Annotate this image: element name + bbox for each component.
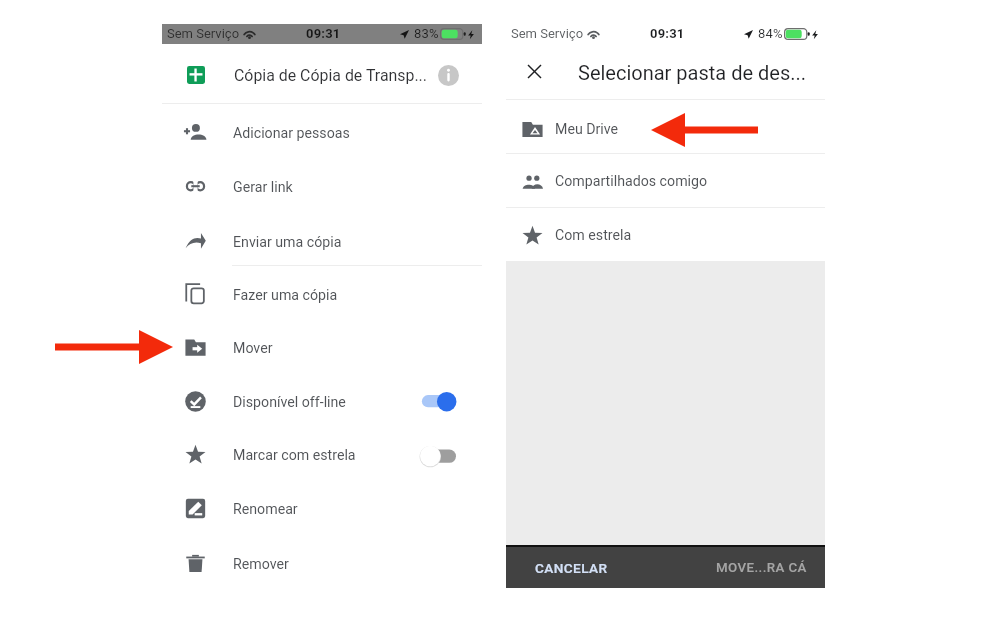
staticText: Compartilhados comigo [555,173,708,190]
staticText: Meu Drive [555,121,619,138]
staticText: Remover [233,556,289,573]
button[interactable]: Com estrela [506,208,825,262]
staticText: Gerar link [233,179,293,196]
staticText: Sem Serviço [167,26,240,41]
staticText: 83% [414,26,439,41]
button[interactable]: CANCELAR [522,547,622,588]
staticText: Selecionar pasta de des... [578,61,807,84]
button[interactable]: Mover [162,320,482,374]
staticText: Enviar uma cópia [233,234,342,251]
staticText: Disponível off-line [233,394,346,411]
button[interactable]: Disponível off-line [162,374,482,428]
staticText: MOVE...RA CÁ [716,560,807,576]
staticText: Sem Serviço [511,26,584,41]
button[interactable]: Fechar [517,54,552,89]
staticText: 84% [758,26,783,41]
button[interactable]: Gerar link [162,159,482,213]
button[interactable]: MOVE...RA CÁ [696,547,816,588]
button[interactable]: Remover [162,536,482,590]
button[interactable]: Renomear [162,481,482,535]
button[interactable] [415,388,457,414]
button[interactable]: Cópia de Cópia de Transp... [162,48,482,102]
staticText: 09:31 [306,26,341,41]
staticText: Adicionar pessoas [233,125,350,142]
button[interactable]: Adicionar pessoas [162,105,482,159]
button[interactable]: Meu Drive [506,102,825,156]
staticText: Com estrela [555,227,632,244]
button[interactable] [415,441,457,467]
staticText: Mover [233,340,273,357]
staticText: Renomear [233,501,298,518]
button[interactable]: Compartilhados comigo [506,154,825,208]
staticText: Fazer uma cópia [233,287,338,304]
staticText: CANCELAR [535,560,608,576]
staticText: Cópia de Cópia de Transp... [234,66,427,85]
button[interactable]: Fazer uma cópia [162,267,482,321]
button[interactable]: Marcar com estrela [162,427,482,481]
button[interactable]: Detalhes do arquivo [435,62,461,88]
staticText: Marcar com estrela [233,447,356,464]
button[interactable]: Enviar uma cópia [162,214,482,268]
staticText: 09:31 [650,26,685,41]
